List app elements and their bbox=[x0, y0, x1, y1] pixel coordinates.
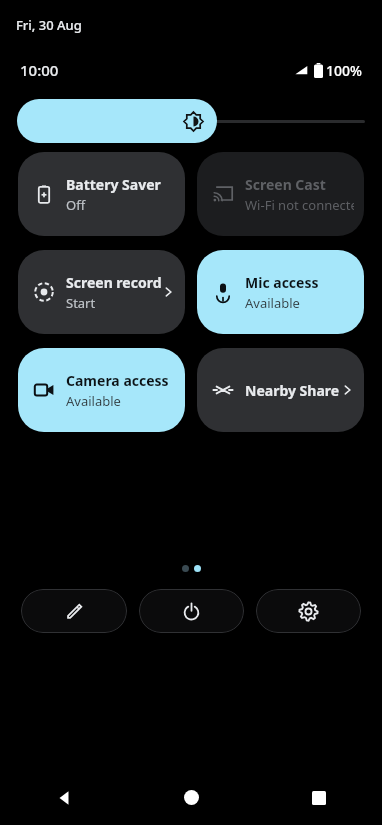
button[interactable]: Battery Saver bbox=[18, 152, 185, 236]
staticText: Screen Cast bbox=[245, 175, 326, 194]
staticText: 10:00 bbox=[20, 60, 59, 80]
staticText: Start bbox=[66, 294, 96, 312]
staticText: Fri, 30 Aug bbox=[16, 16, 82, 34]
button[interactable]: Mic access bbox=[197, 250, 364, 334]
staticText: Battery Saver bbox=[66, 175, 161, 194]
button[interactable]: Power bbox=[139, 589, 244, 633]
staticText: Available bbox=[66, 392, 121, 410]
staticText: Camera access bbox=[66, 371, 169, 390]
staticText: Wi-Fi not connected bbox=[245, 196, 354, 214]
staticText: Off bbox=[66, 196, 86, 214]
button[interactable]: Home bbox=[128, 770, 255, 825]
staticText: Screen record bbox=[66, 273, 161, 292]
other: Brightness bbox=[184, 112, 203, 131]
button[interactable]: Brightness bbox=[17, 99, 217, 143]
staticText: Nearby Share bbox=[245, 381, 340, 400]
staticText: 100% bbox=[326, 61, 362, 80]
button[interactable]: Settings bbox=[256, 589, 361, 633]
button[interactable]: Camera access bbox=[18, 348, 185, 432]
button[interactable]: Screen record bbox=[18, 250, 185, 334]
button[interactable]: Nearby Share bbox=[197, 348, 364, 432]
button[interactable]: Screen Cast bbox=[197, 152, 364, 236]
button[interactable]: Recents bbox=[255, 770, 382, 825]
staticText: Available bbox=[245, 294, 300, 312]
button[interactable]: Back bbox=[0, 770, 128, 825]
staticText: Mic access bbox=[245, 273, 319, 292]
button[interactable]: Edit bbox=[21, 589, 127, 633]
